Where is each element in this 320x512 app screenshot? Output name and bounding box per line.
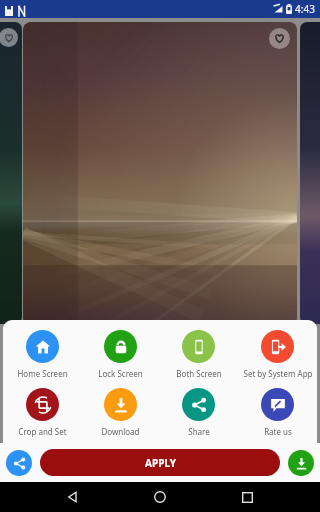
staticText: Share (188, 426, 210, 437)
button[interactable]: Download (81, 387, 159, 438)
staticText: Download (101, 426, 140, 437)
button[interactable]: Set by System App (238, 329, 317, 380)
button[interactable]: Crop and Set (3, 387, 81, 438)
button[interactable]: Lock Screen (81, 329, 159, 380)
button[interactable]: Download (288, 450, 314, 476)
button[interactable]: Recents (233, 483, 261, 511)
button[interactable]: Share (6, 450, 32, 476)
button[interactable]: APPLY (40, 449, 280, 476)
staticText: 4:43 (295, 2, 315, 16)
button[interactable]: Home Screen (3, 329, 81, 380)
button[interactable]: Home (146, 483, 174, 511)
staticText: Rate us (264, 426, 292, 437)
staticText: Crop and Set (18, 426, 67, 437)
staticText: APPLY (145, 456, 176, 470)
staticText: Home Screen (17, 368, 68, 379)
button[interactable]: Rate us (238, 387, 317, 438)
button[interactable]: Share (159, 387, 238, 438)
button[interactable]: Favorite (269, 28, 290, 49)
button[interactable]: Both Screen (159, 329, 238, 380)
button[interactable]: Back (59, 483, 87, 511)
staticText: Set by System App (243, 368, 313, 379)
staticText: Both Screen (176, 368, 222, 379)
button[interactable]: Favorite (0, 28, 18, 47)
staticText: Lock Screen (98, 368, 143, 379)
